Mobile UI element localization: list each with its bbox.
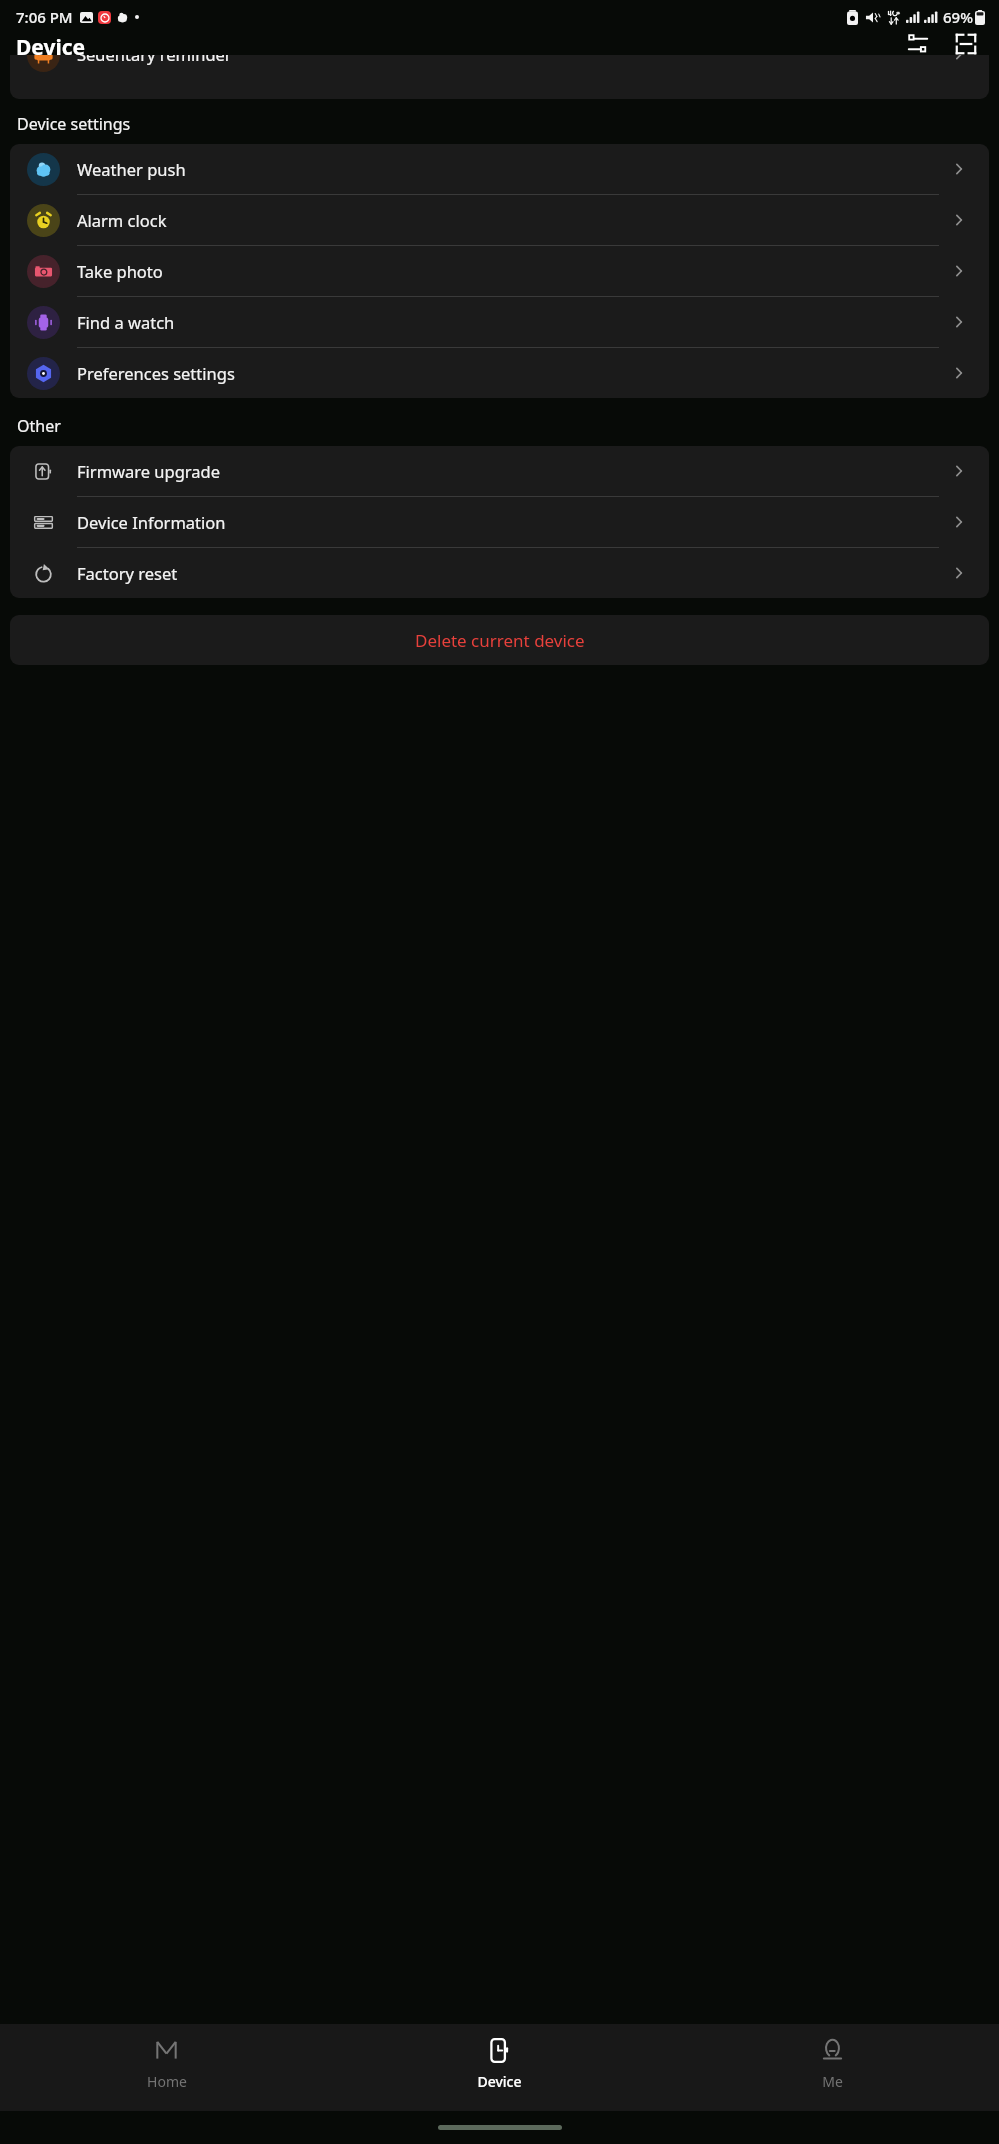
button[interactable]: Alarm clock: [10, 195, 989, 245]
button[interactable]: Scan: [949, 33, 983, 55]
staticText: Take photo: [77, 260, 163, 282]
button[interactable]: Weather push: [10, 144, 989, 194]
button[interactable]: Preferences settings: [10, 348, 989, 398]
staticText: Sedentary reminder: [77, 55, 232, 65]
button[interactable]: Find a watch: [10, 297, 989, 347]
staticText: Device: [16, 33, 86, 55]
button[interactable]: Take photo: [10, 246, 989, 296]
button[interactable]: Factory reset: [10, 548, 989, 598]
button[interactable]: Filter settings: [901, 33, 935, 55]
button[interactable]: Device Information: [10, 497, 989, 547]
staticText: Delete current device: [415, 629, 585, 652]
button[interactable]: Home: [0, 2024, 333, 2111]
staticText: Preferences settings: [77, 362, 235, 384]
button[interactable]: Sedentary reminder: [10, 55, 989, 99]
button[interactable]: Firmware upgrade: [10, 446, 989, 496]
staticText: 7:06 PM: [16, 7, 73, 27]
staticText: Device: [477, 2072, 522, 2091]
button[interactable]: Me: [666, 2024, 999, 2111]
staticText: Device settings: [17, 113, 131, 135]
staticText: Alarm clock: [77, 209, 167, 231]
staticText: 69%: [943, 7, 973, 27]
staticText: Find a watch: [77, 311, 175, 333]
staticText: Other: [17, 415, 61, 437]
staticText: Firmware upgrade: [77, 460, 221, 482]
button[interactable]: Delete current device: [10, 615, 989, 665]
button[interactable]: Device: [333, 2024, 666, 2111]
staticText: Home: [147, 2072, 187, 2091]
staticText: Device Information: [77, 511, 226, 533]
staticText: Factory reset: [77, 562, 178, 584]
staticText: Weather push: [77, 158, 186, 180]
staticText: Me: [822, 2072, 843, 2091]
